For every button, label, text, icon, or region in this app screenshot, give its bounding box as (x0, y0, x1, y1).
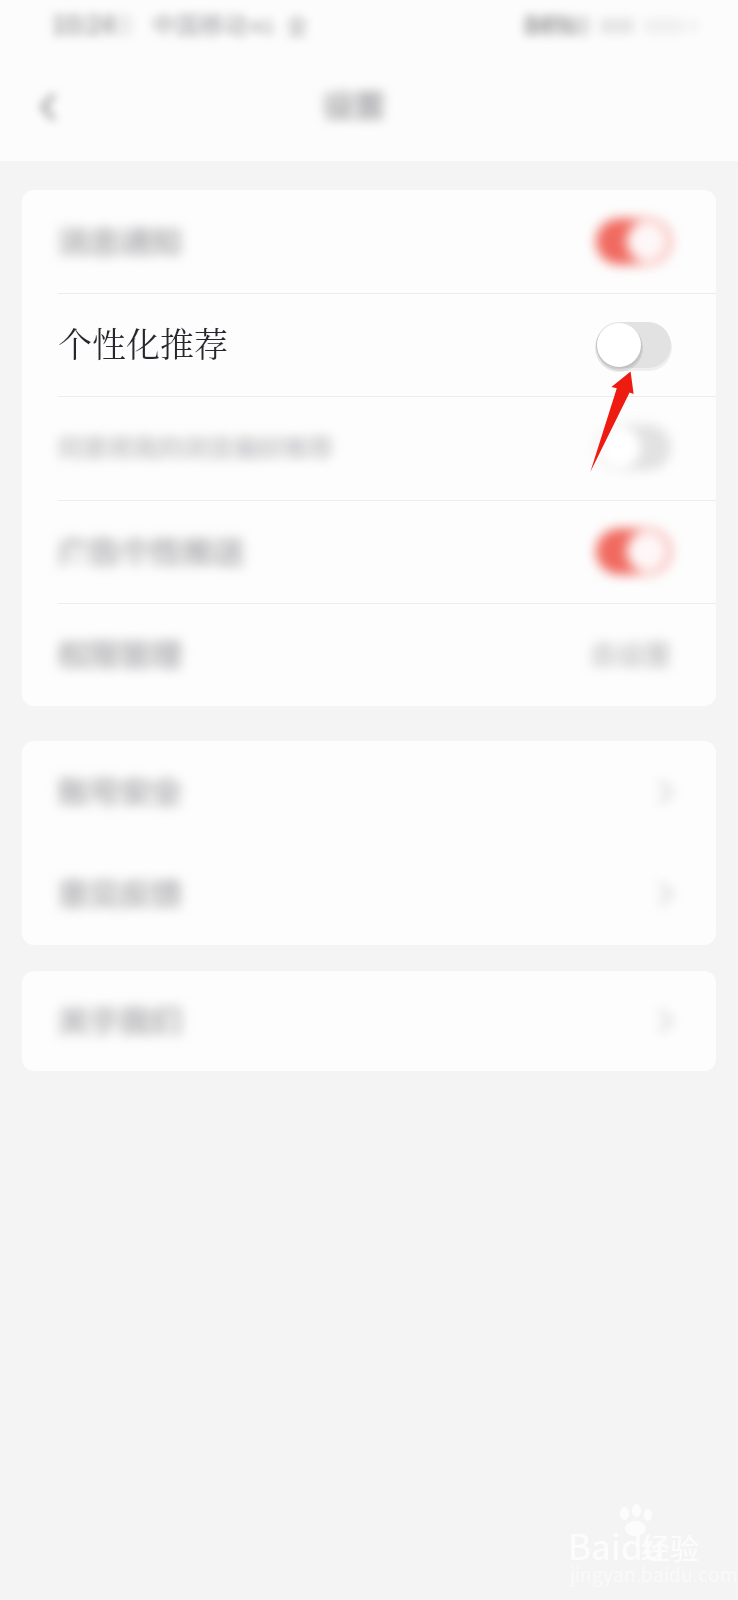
button[interactable]: Personalised recommendation switch (596, 315, 692, 375)
button[interactable] (22, 190, 716, 293)
button[interactable] (22, 500, 716, 603)
button[interactable] (22, 603, 716, 706)
button[interactable] (22, 971, 716, 1071)
button[interactable]: Personalised recommendation switch (22, 293, 716, 396)
button[interactable] (22, 843, 716, 945)
button[interactable] (22, 396, 716, 499)
button[interactable] (22, 741, 716, 843)
button[interactable]: Back (18, 76, 80, 138)
